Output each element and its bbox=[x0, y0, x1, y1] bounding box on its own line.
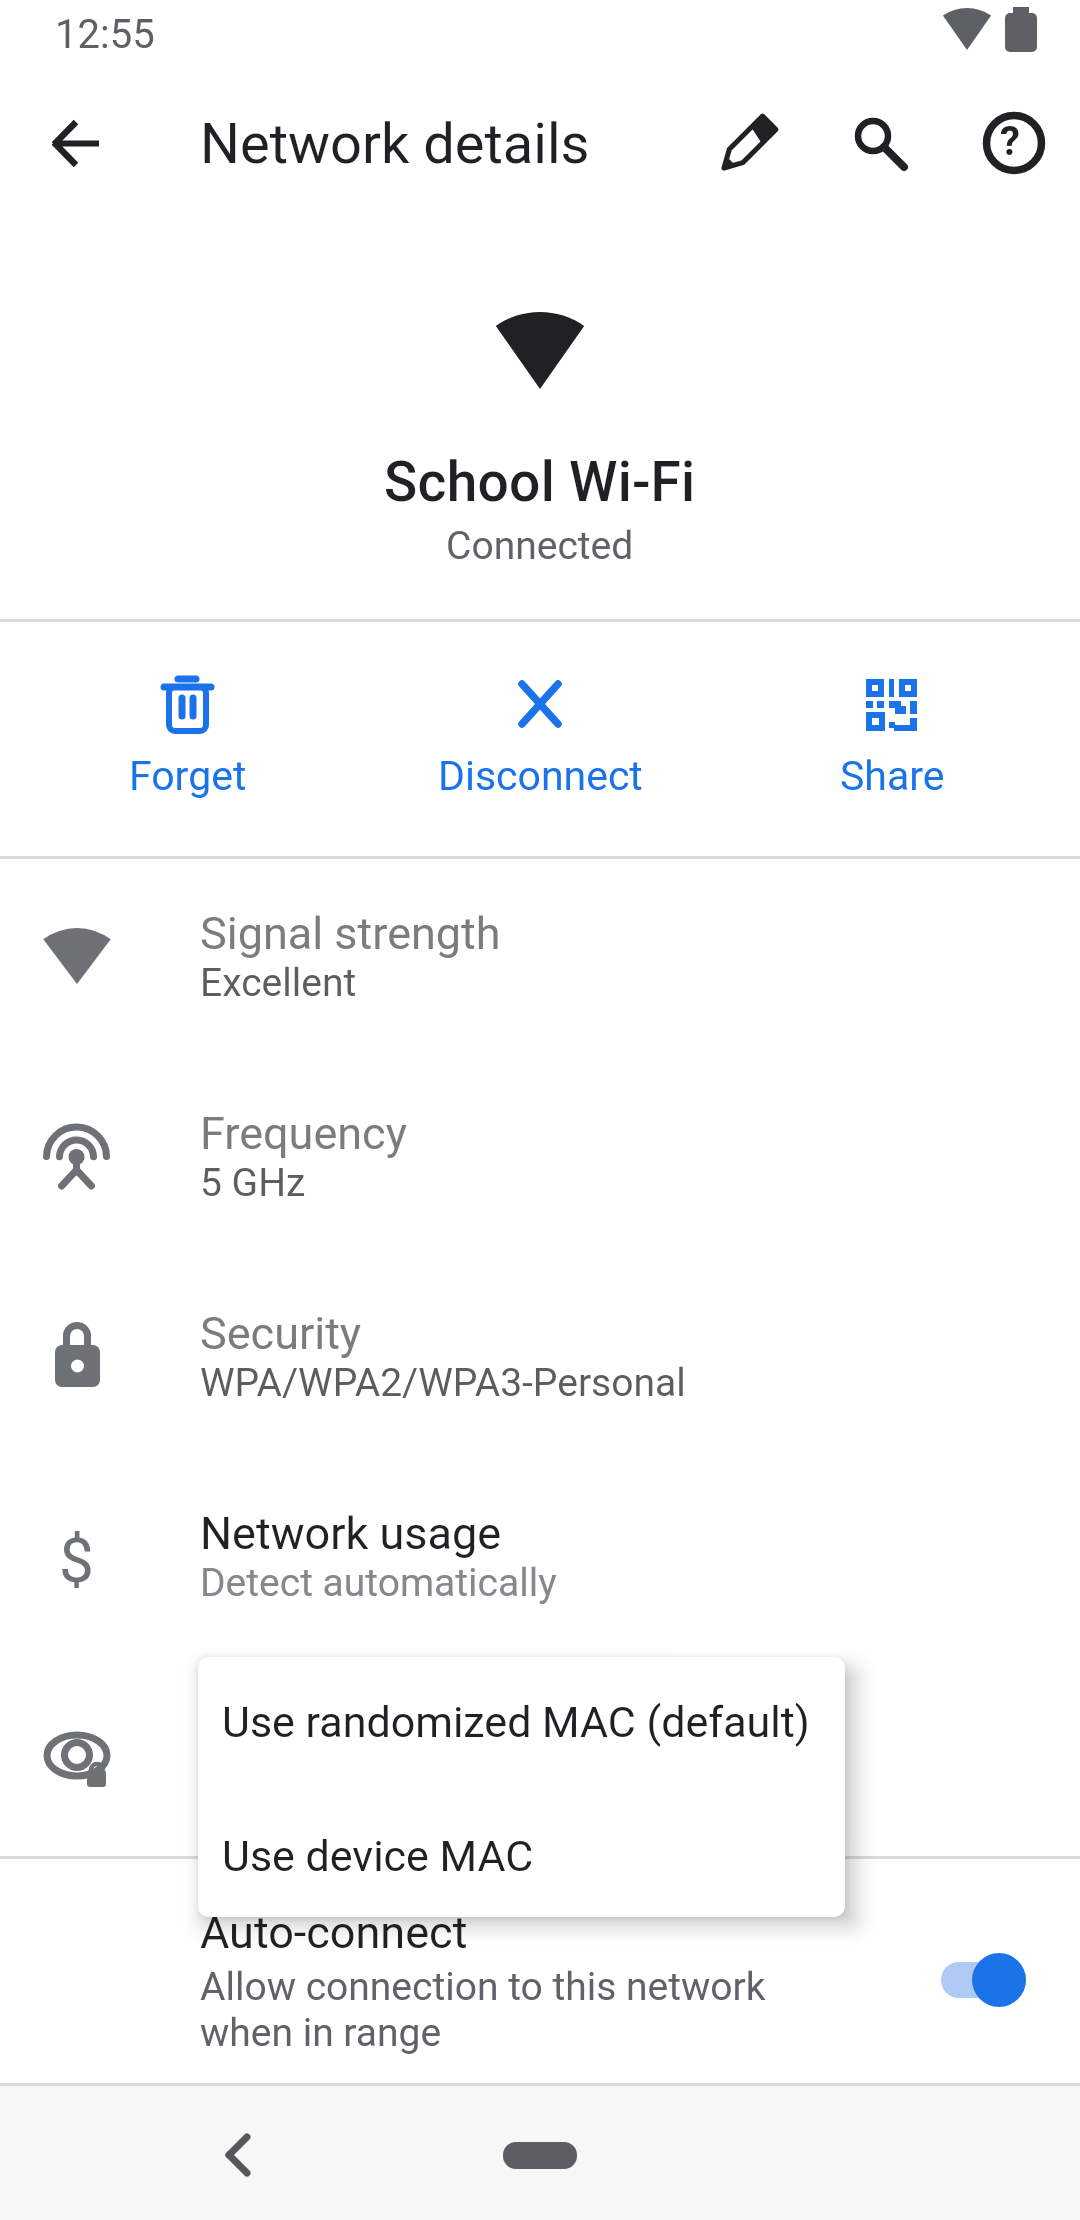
staticText: Share bbox=[840, 752, 945, 800]
button[interactable] bbox=[178, 2095, 298, 2215]
button[interactable] bbox=[975, 105, 1051, 181]
staticText: Security bbox=[200, 1307, 362, 1360]
button[interactable]: Use device MAC bbox=[198, 1787, 845, 1917]
staticText: $ bbox=[59, 1524, 94, 1597]
staticText: WPA/WPA2/WPA3-Personal bbox=[200, 1360, 686, 1406]
button[interactable] bbox=[0, 1656, 1080, 1856]
staticText: Use device MAC bbox=[222, 1831, 534, 1881]
button[interactable]: Share bbox=[782, 655, 1002, 815]
button[interactable]: Signal strength bbox=[0, 856, 1080, 1056]
button[interactable]: Use randomized MAC (default) bbox=[198, 1657, 845, 1787]
staticText: Frequency bbox=[200, 1107, 407, 1160]
staticText: Forget bbox=[129, 752, 247, 800]
staticText: Signal strength bbox=[200, 907, 501, 960]
button[interactable]: Auto-connect bbox=[0, 1859, 1080, 2083]
staticText: Auto-connect bbox=[200, 1906, 468, 1959]
button[interactable]: Network usage bbox=[0, 1456, 1080, 1656]
button[interactable] bbox=[39, 105, 115, 181]
staticText: Connected bbox=[446, 523, 634, 569]
staticText: 12:55 bbox=[55, 11, 155, 58]
staticText: Detect automatically bbox=[200, 1560, 557, 1606]
button[interactable] bbox=[931, 1943, 1036, 2017]
button[interactable]: Disconnect bbox=[430, 655, 650, 815]
staticText: Disconnect bbox=[438, 752, 643, 800]
staticText: 5 GHz bbox=[200, 1160, 306, 1206]
button[interactable] bbox=[834, 105, 910, 181]
staticText: Use randomized MAC (default) bbox=[222, 1697, 810, 1747]
staticText: ? bbox=[1000, 118, 1020, 165]
staticText: School Wi-Fi bbox=[384, 450, 696, 514]
staticText: Network details bbox=[200, 111, 590, 177]
staticText: Excellent bbox=[200, 960, 357, 1006]
button[interactable]: Frequency bbox=[0, 1056, 1080, 1256]
button[interactable] bbox=[711, 105, 787, 181]
staticText: when in range bbox=[200, 2010, 442, 2056]
staticText: Allow connection to this network bbox=[200, 1964, 766, 2010]
button[interactable]: Forget bbox=[78, 655, 298, 815]
button[interactable]: Security bbox=[0, 1256, 1080, 1456]
staticText: Network usage bbox=[200, 1507, 502, 1560]
